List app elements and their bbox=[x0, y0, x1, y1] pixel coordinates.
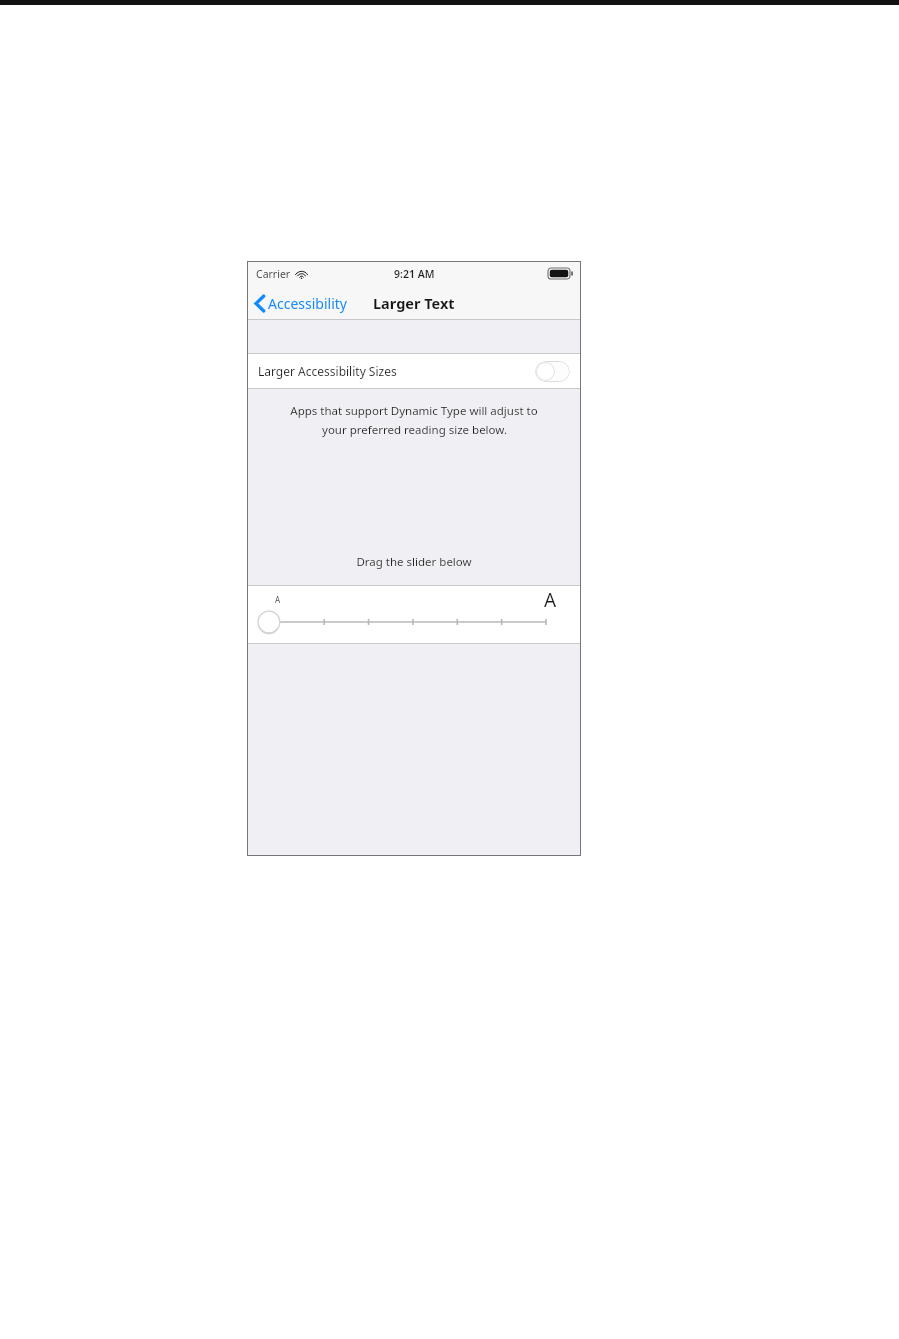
staticText: 9:21 AM bbox=[394, 267, 435, 281]
button[interactable]: Text size slider bbox=[257, 609, 581, 635]
staticText: Accessibility bbox=[268, 294, 347, 313]
staticText: Drag the slider below bbox=[356, 554, 472, 570]
staticText: Carrier bbox=[256, 267, 291, 281]
staticText: Apps that support Dynamic Type will adju… bbox=[290, 403, 538, 419]
button[interactable]: Larger Accessibility Sizes toggle bbox=[535, 361, 570, 382]
staticText: Larger Accessibility Sizes bbox=[258, 363, 397, 379]
button[interactable]: Back bbox=[247, 290, 355, 317]
other: Back bbox=[255, 295, 265, 312]
button[interactable]: Larger Accessibility Sizes bbox=[247, 353, 581, 389]
staticText: Larger Text bbox=[373, 293, 455, 313]
staticText: A bbox=[275, 594, 281, 605]
staticText: A bbox=[544, 587, 557, 613]
staticText: your preferred reading size below. bbox=[322, 422, 507, 438]
